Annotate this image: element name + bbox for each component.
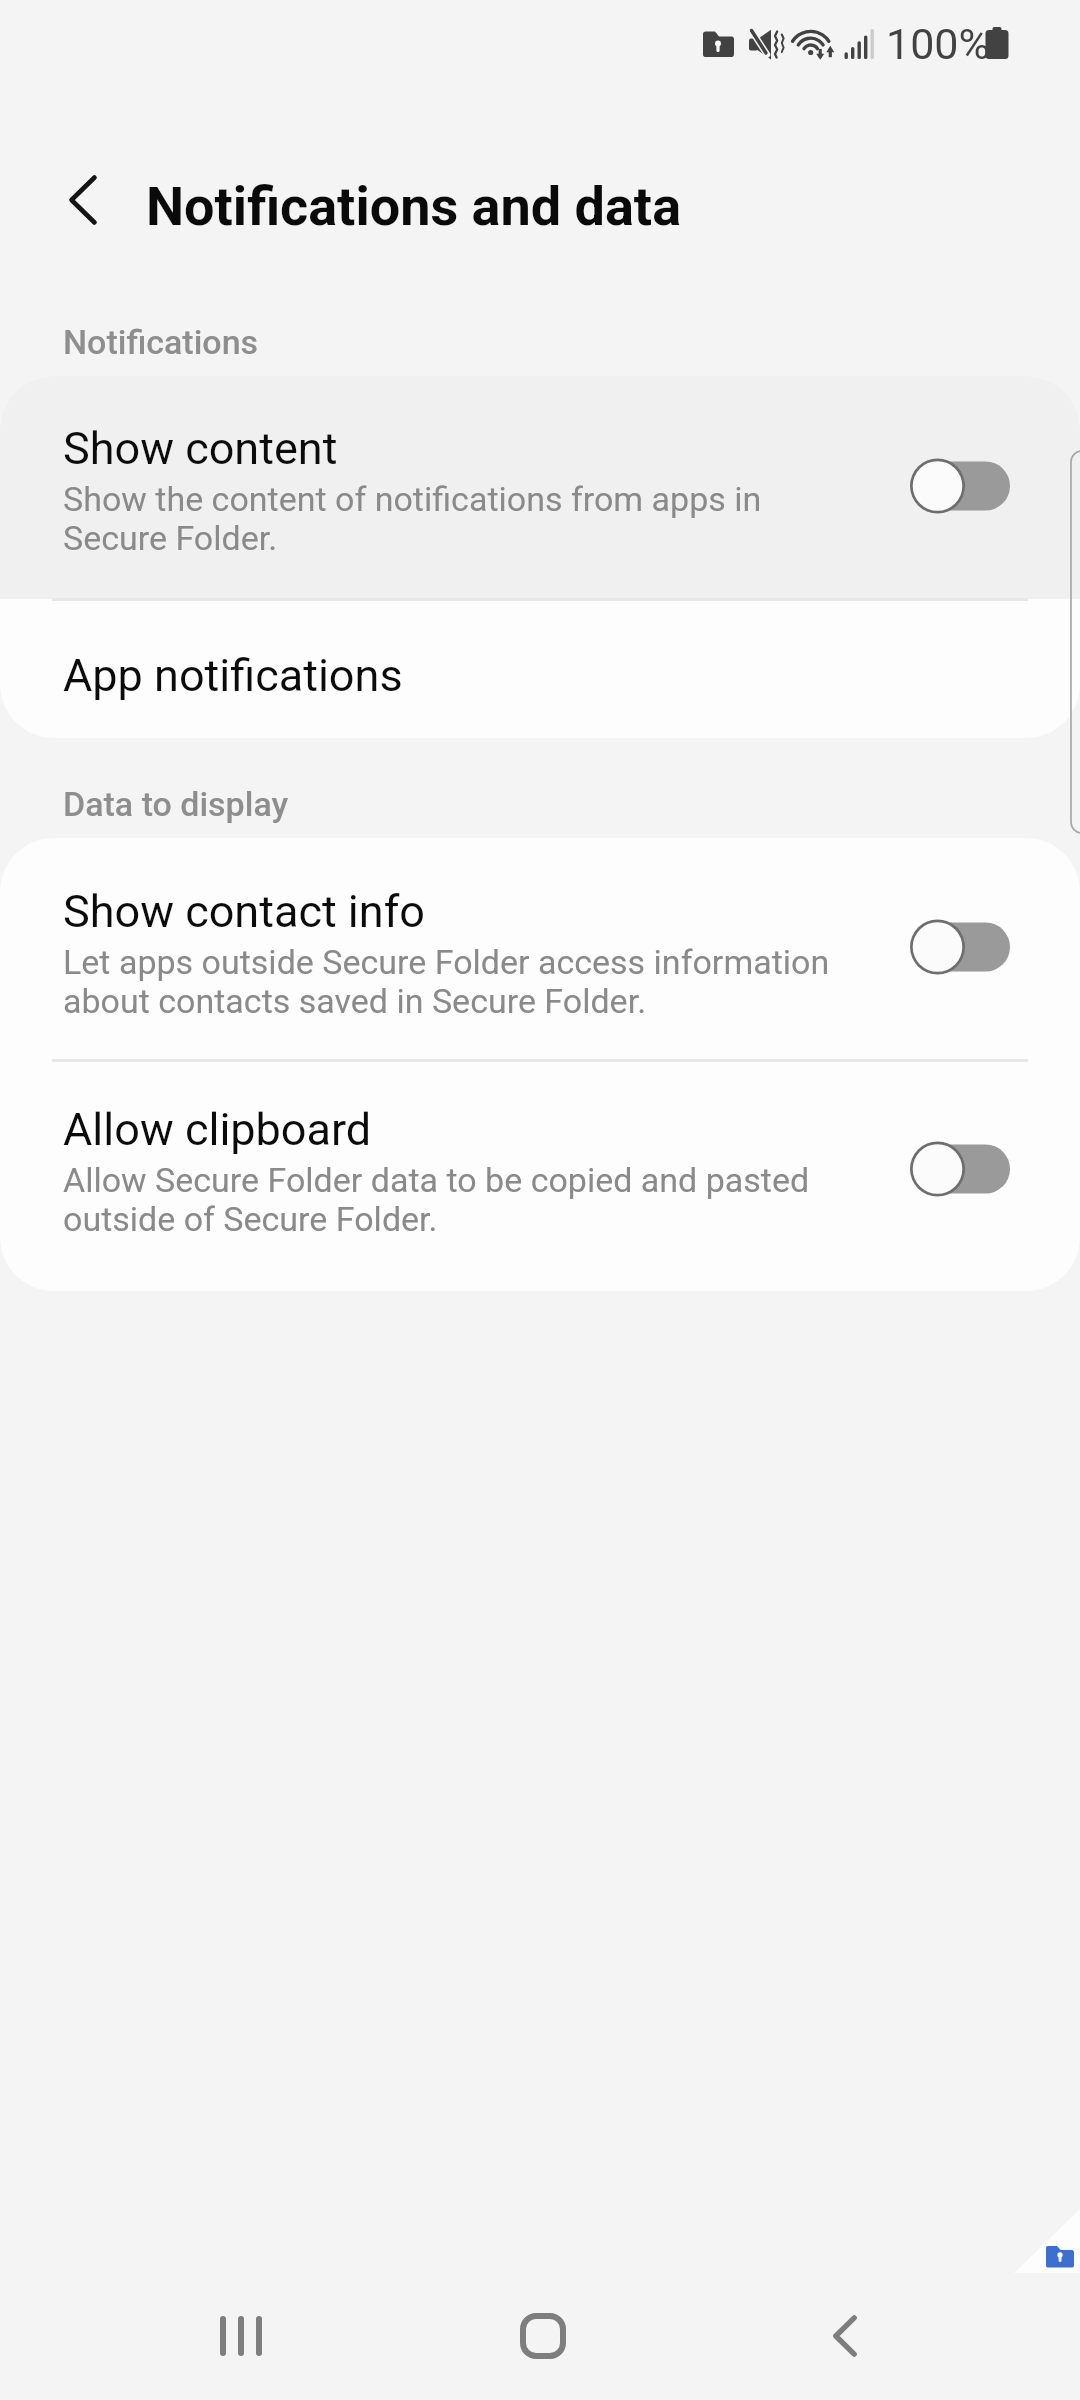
button[interactable]: Show contact info: [0, 838, 1080, 1059]
button[interactable]: Show content: [0, 376, 1080, 599]
button[interactable]: Toggle switch, off: [910, 458, 1006, 514]
staticText: Secure Folder.: [63, 519, 278, 558]
button[interactable]: App notifications: [0, 601, 1080, 738]
staticText: about contacts saved in Secure Folder.: [63, 982, 647, 1021]
button[interactable]: Toggle switch, off: [910, 1141, 1006, 1197]
staticText: Allow Secure Folder data to be copied an…: [63, 1161, 810, 1200]
staticText: Let apps outside Secure Folder access in…: [63, 943, 830, 982]
button[interactable]: Back: [785, 2276, 905, 2396]
staticText: App notifications: [63, 649, 403, 702]
staticText: Notifications and data: [146, 175, 682, 238]
button[interactable]: Toggle switch, off: [910, 919, 1006, 975]
staticText: Data to display: [63, 784, 289, 824]
button[interactable]: Home: [483, 2276, 603, 2396]
staticText: Allow clipboard: [63, 1103, 372, 1156]
staticText: outside of Secure Folder.: [63, 1200, 438, 1239]
staticText: 100%: [886, 19, 990, 69]
staticText: Show contact info: [63, 885, 425, 938]
staticText: Notifications: [63, 322, 259, 362]
staticText: Show the content of notifications from a…: [63, 480, 762, 519]
button[interactable]: Recent apps: [181, 2276, 301, 2396]
staticText: Show content: [63, 422, 338, 475]
button[interactable]: Allow clipboard: [0, 1062, 1080, 1291]
button[interactable]: Navigate up: [25, 130, 141, 270]
